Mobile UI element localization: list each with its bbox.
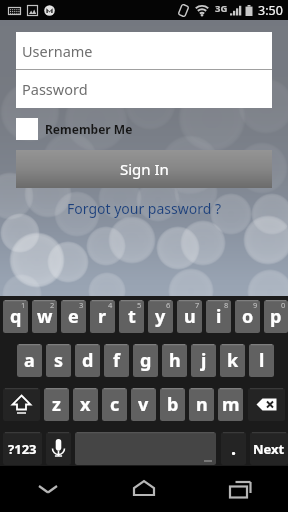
staticText: Username [22,41,93,61]
staticText: 3G [215,2,228,15]
staticText: Remember Me [45,121,133,137]
staticText: l [259,348,265,373]
staticText: Forgot your password ? [67,199,222,218]
button[interactable]: Voice input [46,432,71,465]
staticText: 9 [253,300,258,310]
button[interactable]: d [75,344,100,377]
staticText: b [167,392,179,417]
staticText: r [98,304,107,329]
staticText: n [196,392,208,417]
button[interactable]: Backspace [248,388,285,421]
button[interactable]: h [162,344,187,377]
staticText: d [82,348,94,373]
button[interactable]: j [191,344,216,377]
button[interactable]: Space [75,432,216,465]
staticText: ?123 [8,440,37,458]
button[interactable]: o [235,300,260,333]
staticText: u [184,304,196,329]
staticText: 6 [166,300,171,310]
button[interactable]: c [102,388,127,421]
button[interactable]: Next [250,432,288,465]
button[interactable]: Back [0,466,96,512]
staticText: 4 [108,300,113,310]
button[interactable]: Shift [3,388,40,421]
button[interactable]: v [131,388,156,421]
staticText: 7 [195,300,200,310]
staticText: Next [253,440,285,458]
button[interactable]: Recent apps [192,466,288,512]
staticText: o [242,304,254,329]
staticText: q [10,304,22,329]
staticText: 3 [79,300,84,310]
button[interactable]: Home [96,466,192,512]
staticText: c [110,392,120,417]
button[interactable]: s [46,344,71,377]
button[interactable]: n [189,388,214,421]
button[interactable]: t [119,300,144,333]
button[interactable]: p [264,300,288,333]
staticText: 5 [137,300,142,310]
button[interactable]: Password [16,70,272,108]
staticText: x [80,392,91,417]
button[interactable]: g [133,344,158,377]
button[interactable]: a [17,344,42,377]
staticText: s [54,348,64,373]
button[interactable]: Username [16,32,272,69]
staticText: w [37,304,53,329]
button[interactable]: Remember Me [16,118,133,140]
staticText: f [113,348,120,373]
staticText: . [231,436,237,461]
staticText: e [68,304,79,329]
button[interactable]: z [44,388,69,421]
staticText: z [52,392,61,417]
staticText: y [155,304,166,329]
staticText: 0 [281,300,286,310]
button[interactable]: r [90,300,115,333]
button[interactable]: e [61,300,86,333]
button[interactable]: q [3,300,28,333]
button[interactable]: ?123 [3,432,42,465]
button[interactable]: Forgot your password ? [67,199,222,218]
staticText: k [227,348,239,373]
staticText: 3:50 [258,2,283,19]
staticText: j [201,348,207,373]
button[interactable]: u [177,300,202,333]
button[interactable]: b [160,388,185,421]
staticText: g [140,348,152,373]
staticText: t [128,304,136,329]
button[interactable]: l [249,344,274,377]
button[interactable]: x [73,388,98,421]
staticText: Sign In [120,159,169,179]
staticText: 8 [224,300,229,310]
staticText: Password [22,79,88,99]
button[interactable]: f [104,344,129,377]
button[interactable]: k [220,344,245,377]
staticText: v [138,392,149,417]
button[interactable]: m [218,388,243,421]
button[interactable]: . [221,432,246,465]
button[interactable]: Sign In [16,150,272,188]
staticText: i [216,304,222,329]
staticText: 1 [21,300,26,310]
button[interactable]: w [32,300,57,333]
button[interactable]: i [206,300,231,333]
staticText: m [222,392,240,417]
staticText: a [24,348,35,373]
staticText: p [270,304,282,329]
button[interactable]: y [148,300,173,333]
staticText: h [169,348,181,373]
staticText: 2 [50,300,55,310]
